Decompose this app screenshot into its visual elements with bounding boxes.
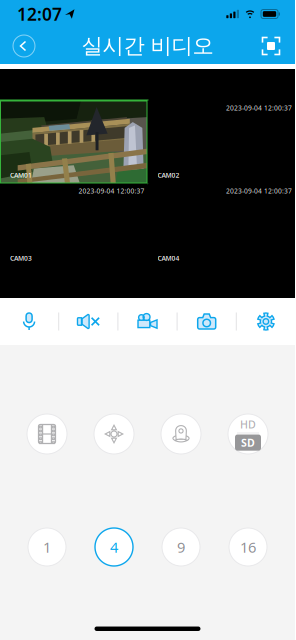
button[interactable]: Fisheye view xyxy=(161,414,201,454)
staticText: 16 xyxy=(240,537,256,557)
staticText: 2023-09-04 12:00:37 xyxy=(78,186,144,195)
button[interactable]: Split view 16 xyxy=(229,528,267,566)
button[interactable]: Split view 4 xyxy=(95,528,133,566)
button[interactable]: Playback xyxy=(27,414,67,454)
staticText: HD xyxy=(240,417,256,431)
staticText: 1 xyxy=(43,537,51,557)
button[interactable]: Split view 9 xyxy=(162,528,200,566)
staticText: CAM02 xyxy=(157,171,179,179)
button[interactable]: Split view 1 xyxy=(28,528,66,566)
staticText: 9 xyxy=(177,537,185,557)
staticText: 4 xyxy=(110,537,118,557)
staticText: CAM01 xyxy=(10,171,32,179)
button[interactable]: Stream quality HD or SD xyxy=(228,414,268,454)
button[interactable]: Mute xyxy=(59,298,117,345)
button[interactable]: Back xyxy=(13,35,35,57)
button[interactable]: Record video xyxy=(118,298,177,345)
button[interactable]: Take snapshot xyxy=(178,298,236,345)
staticText: SD xyxy=(241,435,255,450)
staticText: CAM04 xyxy=(157,254,179,262)
staticText: 12:07 xyxy=(17,2,62,25)
button[interactable]: Microphone xyxy=(0,298,58,345)
staticText: CAM03 xyxy=(10,254,32,262)
button[interactable]: Settings xyxy=(237,298,295,345)
staticText: 실시간 비디오 xyxy=(81,33,213,59)
staticText: 2023-09-04 12:00:37 xyxy=(226,103,292,112)
button[interactable]: Full screen xyxy=(260,35,282,57)
staticText: 2023-09-04 12:00:37 xyxy=(226,186,292,195)
button[interactable]: PTZ control xyxy=(94,414,134,454)
